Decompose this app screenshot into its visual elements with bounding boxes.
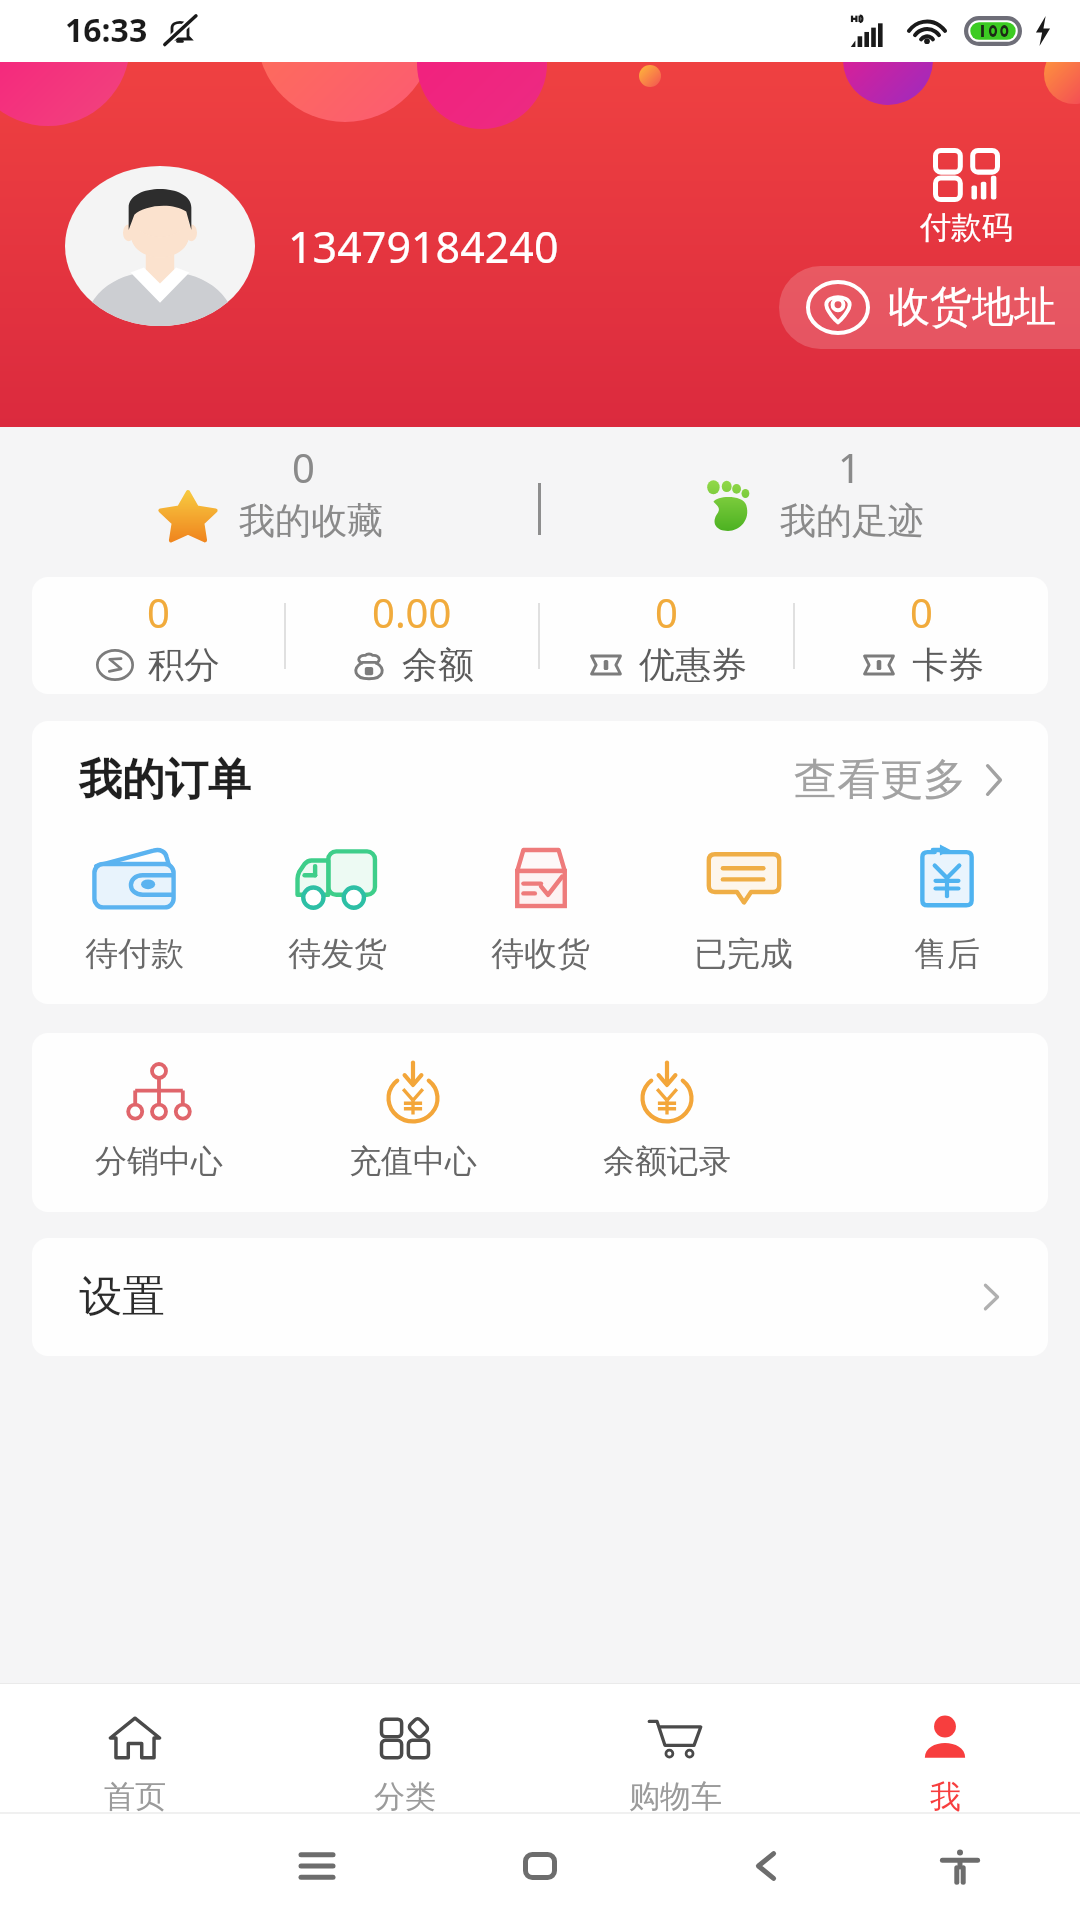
staticText: 我 xyxy=(930,1777,961,1812)
staticText: 售后 xyxy=(914,933,980,975)
staticText: 待收货 xyxy=(491,933,590,975)
staticText: 优惠券 xyxy=(639,642,747,687)
staticText: 16:33 xyxy=(65,8,148,52)
button[interactable]: 首页 xyxy=(0,1684,270,1812)
staticText: 我的订单 xyxy=(79,753,251,807)
staticText: 我的收藏 xyxy=(239,498,383,543)
staticText: 余额 xyxy=(402,642,474,687)
staticText: 收货地址 xyxy=(888,281,1056,334)
button[interactable]: 设置 xyxy=(32,1238,1048,1356)
staticText: 0.00 xyxy=(372,585,452,639)
button[interactable]: 付款码 xyxy=(906,148,1026,247)
staticText: 13479184240 xyxy=(288,217,559,276)
button[interactable]: Recent apps xyxy=(277,1826,357,1906)
staticText: 已完成 xyxy=(694,933,793,975)
staticText: 购物车 xyxy=(629,1777,722,1812)
staticText: 0 xyxy=(910,585,933,639)
button[interactable]: 待付款 xyxy=(32,839,236,975)
button[interactable]: 售后 xyxy=(845,839,1048,975)
staticText: 积分 xyxy=(148,642,220,687)
staticText: 付款码 xyxy=(920,208,1013,247)
staticText: 余额记录 xyxy=(603,1141,731,1181)
button[interactable] xyxy=(65,166,255,326)
button[interactable]: 收货地址 xyxy=(779,266,1080,349)
button[interactable]: 购物车 xyxy=(540,1684,810,1812)
staticText: 0 xyxy=(655,585,678,639)
button[interactable]: 分销中心 xyxy=(32,1051,286,1187)
button[interactable]: 0 xyxy=(32,577,284,694)
button[interactable]: 查看更多 xyxy=(794,753,1004,807)
staticText: 分类 xyxy=(374,1777,436,1812)
staticText: 待发货 xyxy=(288,933,387,975)
button[interactable]: 我 xyxy=(810,1684,1080,1812)
button[interactable]: Back xyxy=(726,1826,806,1906)
button[interactable]: 1 xyxy=(680,427,950,577)
button[interactable]: Accessibility xyxy=(920,1826,1000,1906)
button[interactable]: 0 xyxy=(140,427,400,577)
button[interactable]: 0 xyxy=(795,577,1048,694)
button[interactable]: Home xyxy=(500,1826,580,1906)
staticText: 首页 xyxy=(104,1777,166,1812)
button[interactable]: 充值中心 xyxy=(286,1051,540,1187)
staticText: 0 xyxy=(147,585,170,639)
staticText: 分销中心 xyxy=(95,1141,223,1181)
staticText: 查看更多 xyxy=(794,753,966,807)
button[interactable]: 待发货 xyxy=(236,839,439,975)
button[interactable]: 分类 xyxy=(270,1684,540,1812)
staticText: 1 xyxy=(838,440,861,494)
staticText: 充值中心 xyxy=(349,1141,477,1181)
button[interactable]: 0.00 xyxy=(286,577,538,694)
button[interactable]: 已完成 xyxy=(642,839,845,975)
button[interactable]: 0 xyxy=(540,577,793,694)
button[interactable]: 余额记录 xyxy=(540,1051,794,1187)
button[interactable]: 待收货 xyxy=(439,839,642,975)
staticText: 卡券 xyxy=(912,642,984,687)
staticText: 0 xyxy=(292,440,315,494)
staticText: 我的足迹 xyxy=(780,498,924,543)
staticText: 待付款 xyxy=(85,933,184,975)
staticText: 设置 xyxy=(79,1270,165,1324)
